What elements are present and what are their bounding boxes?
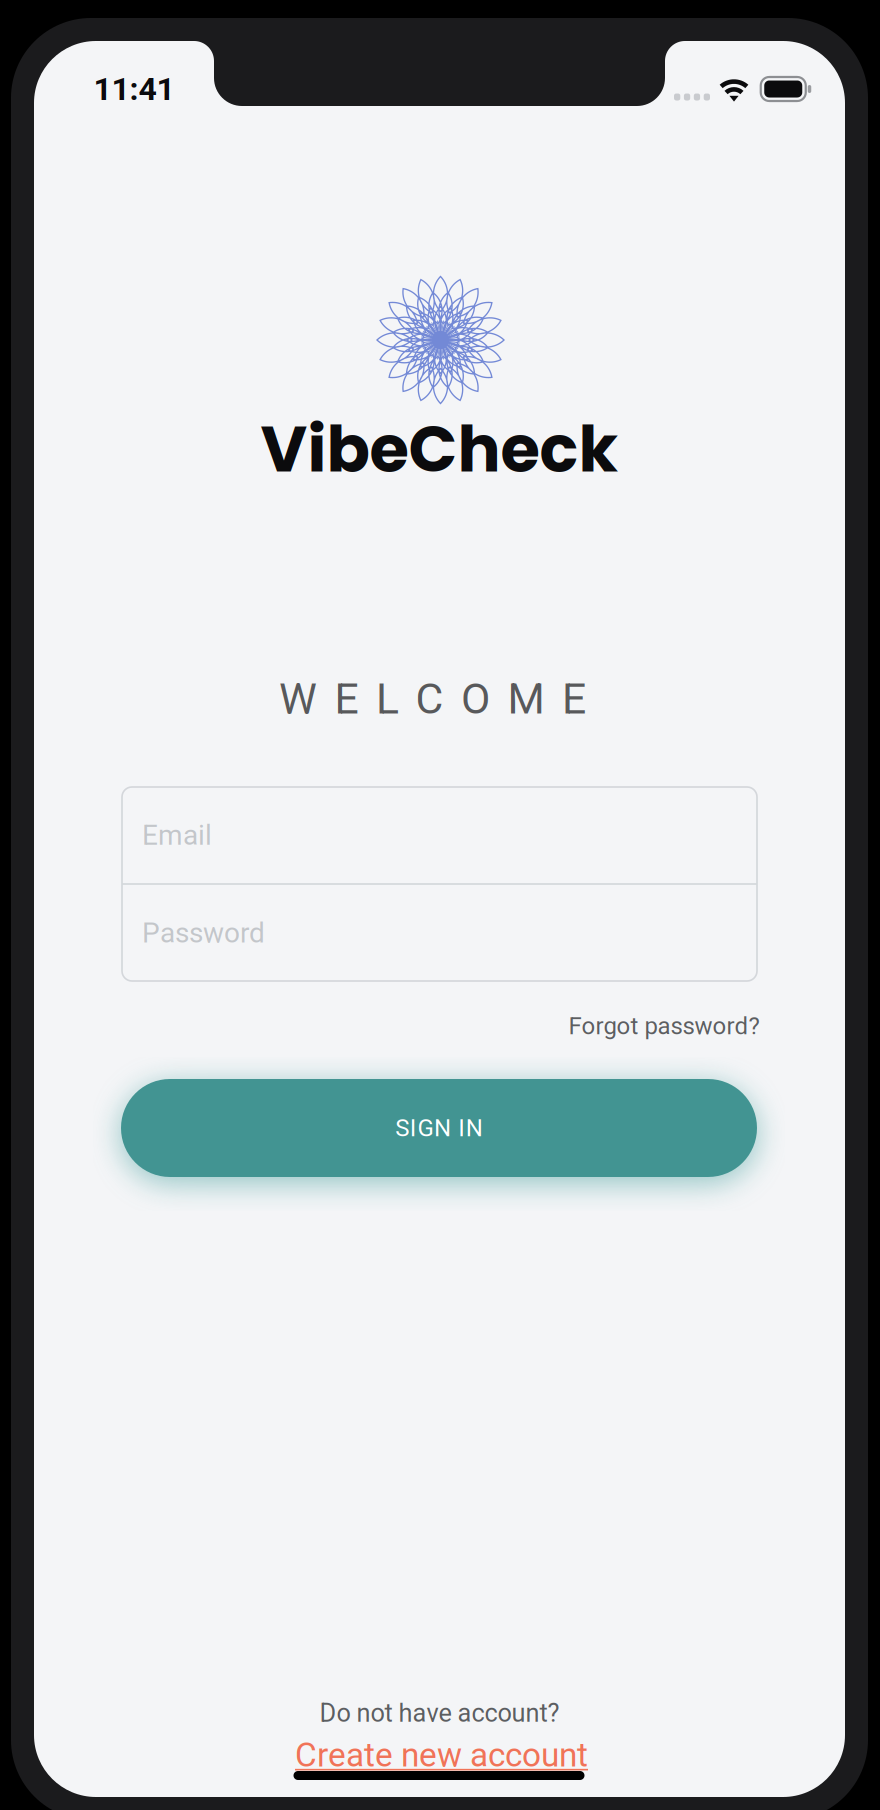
staticText: Do not have account? (319, 1698, 559, 1728)
staticText: Password (142, 916, 265, 949)
staticText: VibeCheck (260, 404, 618, 494)
staticText: Email (142, 819, 212, 851)
button[interactable]: Password (122, 885, 757, 981)
button[interactable]: SIGN IN (121, 1079, 757, 1177)
button[interactable]: Email (122, 787, 757, 883)
button[interactable]: Forgot password? (568, 1012, 759, 1040)
staticText: Create new account (295, 1735, 588, 1775)
staticText: Forgot password? (568, 1012, 759, 1040)
staticText: WELCOME (279, 674, 586, 724)
staticText: 11:41 (93, 70, 174, 108)
staticText: SIGN IN (395, 1114, 483, 1142)
button[interactable]: Create new account (295, 1735, 588, 1775)
